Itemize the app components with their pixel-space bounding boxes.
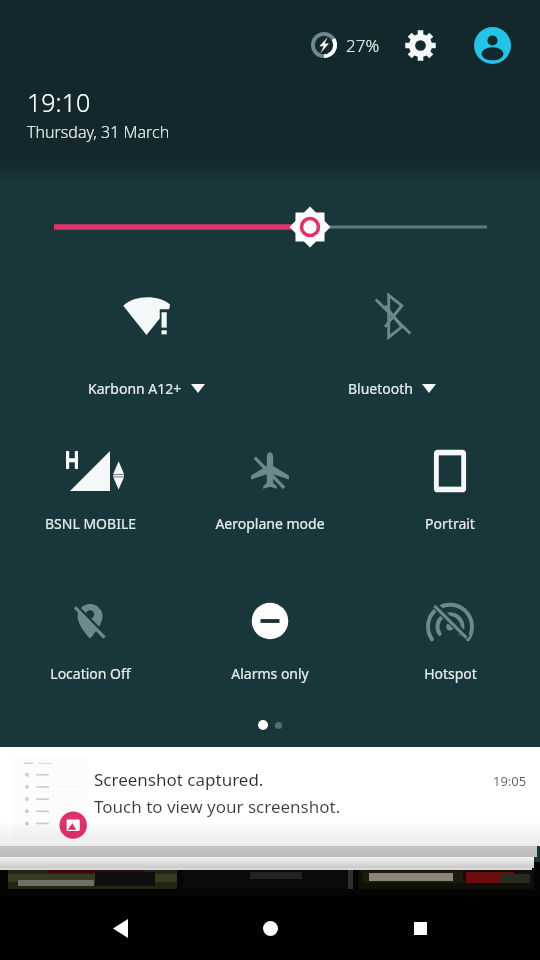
button[interactable]: Brightness: [0, 200, 540, 254]
button[interactable]: Hotspot: [360, 577, 540, 691]
staticText: 19:05: [493, 772, 527, 790]
button[interactable]: Aeroplane mode: [180, 427, 360, 541]
button[interactable]: User profile: [470, 23, 514, 67]
staticText: Hotspot: [424, 664, 477, 683]
staticText: Aeroplane mode: [215, 514, 325, 533]
staticText: Bluetooth: [348, 379, 413, 398]
staticText: Thursday, 31 March: [27, 121, 170, 143]
button[interactable]: Battery 27 percent charging: [311, 24, 380, 66]
button[interactable]: Karbonn A12+: [23, 271, 269, 403]
button[interactable]: Back: [96, 904, 144, 952]
staticText: Portrait: [425, 514, 475, 533]
staticText: 27%: [346, 34, 380, 57]
button[interactable]: Settings: [398, 23, 442, 67]
button[interactable]: Portrait: [360, 427, 540, 541]
button[interactable]: Home: [246, 904, 294, 952]
staticText: Location Off: [50, 664, 131, 683]
staticText: Alarms only: [231, 664, 309, 683]
staticText: Screenshot captured.: [94, 768, 264, 791]
staticText: Touch to view your screenshot.: [94, 795, 341, 818]
button[interactable]: Alarms only: [180, 577, 360, 691]
button[interactable]: Bluetooth: [269, 271, 515, 403]
staticText: BSNL MOBILE: [45, 514, 136, 533]
staticText: 19:10: [27, 85, 91, 119]
button[interactable]: Location Off: [0, 577, 180, 691]
button[interactable]: BSNL MOBILE: [0, 427, 180, 541]
button[interactable]: Recent apps: [396, 904, 444, 952]
staticText: Karbonn A12+: [88, 379, 182, 398]
button[interactable]: Screenshot captured.: [0, 747, 540, 846]
